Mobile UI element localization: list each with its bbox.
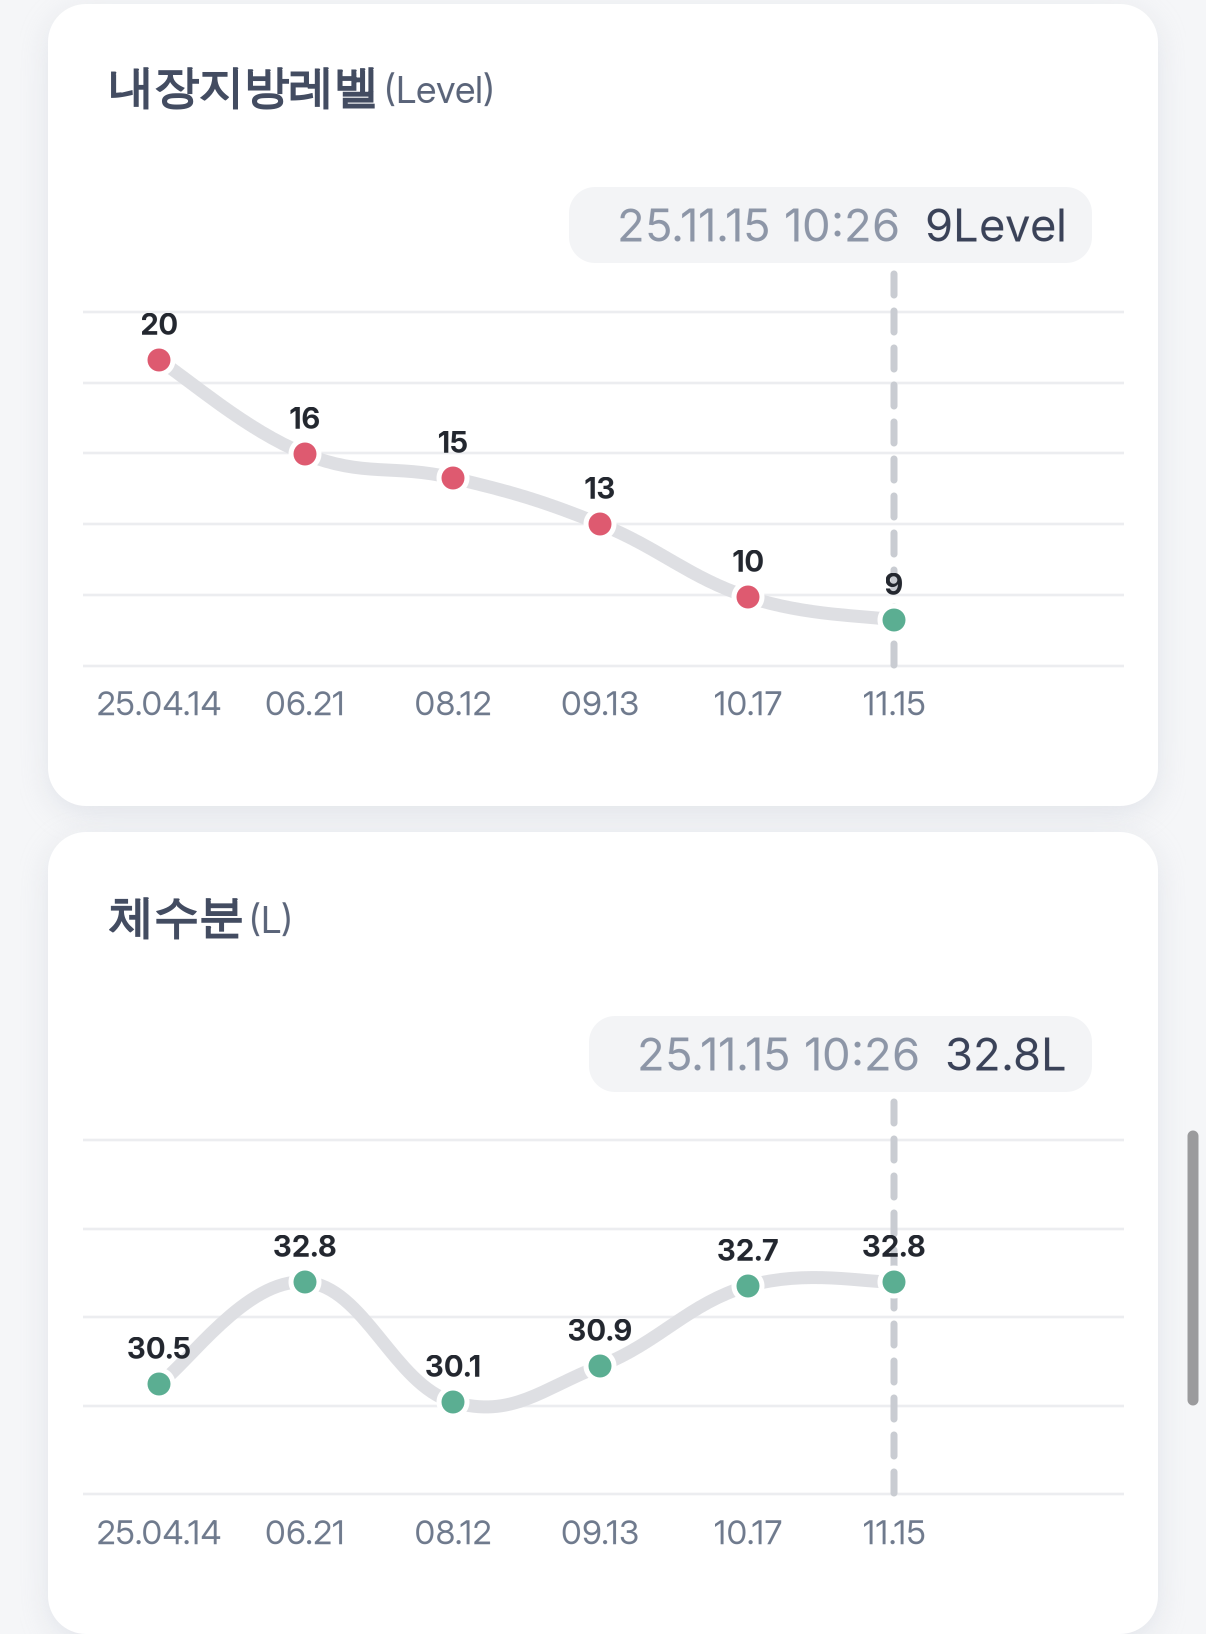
staticText: 06.21 xyxy=(265,683,345,723)
staticText: 25.11.15 10:26 xyxy=(617,198,900,252)
staticText: 09.13 xyxy=(561,1512,639,1552)
staticText: 30.5 xyxy=(127,1330,191,1366)
staticText: 25.11.15 10:26 xyxy=(637,1027,920,1081)
staticText: 32.8 xyxy=(273,1228,337,1264)
button[interactable]: 체수분 (L) trend chart, latest 32.8L on 25.… xyxy=(48,832,1158,1634)
staticText: 내장지방레벨 xyxy=(108,59,378,116)
staticText: 25.04.14 xyxy=(96,1512,221,1552)
staticText: 09.13 xyxy=(561,683,639,723)
staticText: 30.1 xyxy=(425,1348,481,1384)
staticText: 16 xyxy=(289,400,320,436)
staticText: 11.15 xyxy=(862,1512,925,1552)
staticText: 10.17 xyxy=(713,1512,782,1552)
staticText: 32.8 xyxy=(862,1228,926,1264)
staticText: 10 xyxy=(732,543,763,579)
button[interactable]: 내장지방레벨 (Level) trend chart, latest 9Leve… xyxy=(48,4,1158,806)
staticText: 32.8L xyxy=(945,1027,1067,1081)
staticText: 9 xyxy=(884,566,903,602)
staticText: 06.21 xyxy=(265,1512,345,1552)
staticText: 30.9 xyxy=(567,1312,632,1348)
staticText: 08.12 xyxy=(414,683,491,723)
staticText: 20 xyxy=(140,306,177,342)
staticText: 25.04.14 xyxy=(96,683,221,723)
staticText: 08.12 xyxy=(414,1512,491,1552)
staticText: 13 xyxy=(584,470,615,506)
staticText: 10.17 xyxy=(713,683,782,723)
staticText: 15 xyxy=(438,424,468,460)
staticText: (L) xyxy=(249,897,293,942)
staticText: 11.15 xyxy=(862,683,925,723)
staticText: (Level) xyxy=(384,67,495,112)
staticText: 32.7 xyxy=(717,1232,779,1268)
staticText: 체수분 xyxy=(108,889,243,946)
staticText: 9Level xyxy=(925,198,1067,252)
